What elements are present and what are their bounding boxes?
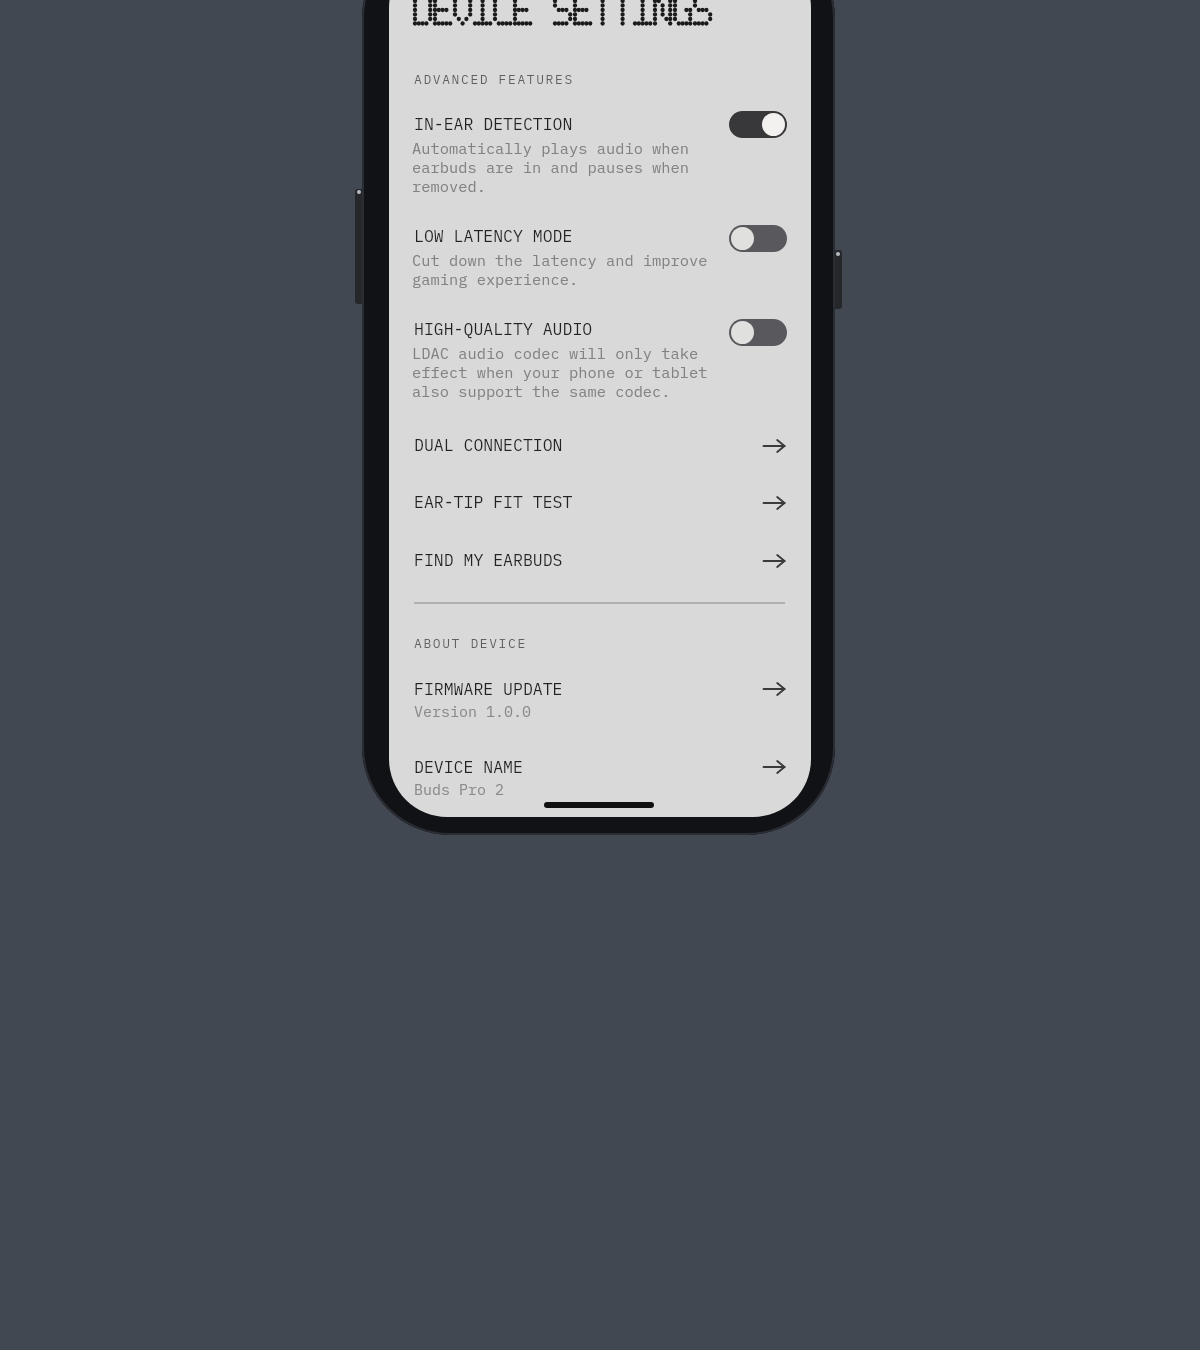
button[interactable]: FIND MY EARBUDS	[414, 549, 785, 569]
staticText: EAR-TIP FIT TEST	[414, 491, 573, 511]
button[interactable]: EAR-TIP FIT TEST	[414, 491, 785, 511]
staticText: ABOUT DEVICE	[414, 635, 527, 652]
staticText: Cut down the latency and improve gaming …	[412, 250, 708, 289]
button[interactable]	[729, 225, 787, 252]
button[interactable]	[729, 111, 787, 138]
staticText: Version 1.0.0	[414, 702, 532, 722]
button[interactable]: DEVICE NAME	[414, 756, 785, 801]
staticText: ADVANCED FEATURES	[414, 71, 574, 88]
staticText: LDAC audio codec will only take effect w…	[412, 343, 708, 401]
staticText: FIND MY EARBUDS	[414, 549, 563, 569]
button[interactable]: FIRMWARE UPDATE	[414, 678, 785, 723]
staticText: Automatically plays audio when earbuds a…	[412, 138, 690, 196]
staticText: IN-EAR DETECTION	[414, 113, 573, 134]
button[interactable]	[729, 319, 787, 346]
staticText: Buds Pro 2	[414, 780, 505, 800]
staticText: HIGH-QUALITY AUDIO	[414, 318, 593, 339]
staticText: DEVICE NAME	[414, 756, 523, 777]
button[interactable]: DUAL CONNECTION	[414, 434, 785, 454]
staticText: FIRMWARE UPDATE	[414, 678, 563, 699]
staticText: LOW LATENCY MODE	[414, 225, 573, 246]
staticText: DUAL CONNECTION	[414, 434, 563, 454]
